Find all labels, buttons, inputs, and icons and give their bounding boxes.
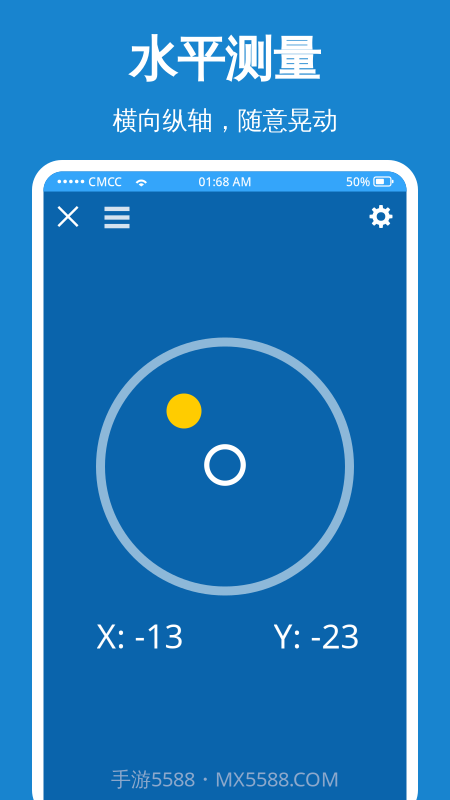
button[interactable]: Menu — [92, 195, 141, 238]
staticText: X: -13 — [96, 613, 183, 658]
staticText: Y: -23 — [273, 613, 359, 658]
staticText: 水平测量 — [129, 30, 321, 89]
staticText: 01:68 AM — [198, 173, 251, 189]
button[interactable]: Close — [43, 195, 92, 238]
button[interactable]: Settings — [355, 195, 406, 238]
staticText: 50% — [346, 173, 370, 189]
staticText: 手游5588・MX5588.COM — [111, 765, 339, 792]
staticText: CMCC — [88, 173, 122, 189]
staticText: 横向纵轴，随意晃动 — [112, 105, 337, 136]
